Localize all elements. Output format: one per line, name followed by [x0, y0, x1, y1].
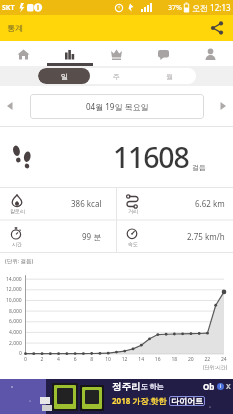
button[interactable]: 주 — [90, 68, 143, 84]
button[interactable] — [186, 41, 233, 66]
button[interactable]: 04월 19일 목요일 — [30, 94, 204, 119]
button[interactable]: 칼로리 — [0, 187, 116, 220]
staticText: SKT — [2, 3, 15, 13]
staticText: 거리 — [128, 208, 138, 214]
button[interactable]: 월 — [143, 68, 196, 84]
button[interactable] — [210, 21, 224, 35]
staticText: 37% — [168, 3, 182, 13]
staticText: Ob — [203, 381, 215, 392]
button[interactable]: 시간 — [0, 220, 116, 253]
staticText: X — [226, 382, 231, 392]
staticText: 2.75 km/h — [187, 231, 225, 242]
staticText: 2018 가장 핫한 — [112, 395, 167, 406]
staticText: 칼로리 — [10, 208, 25, 214]
staticText: 다이어트 — [171, 396, 203, 406]
staticText: 주 — [113, 72, 120, 81]
staticText: 정주리 — [112, 381, 141, 393]
button[interactable] — [218, 101, 228, 111]
staticText: 04월 19일 목요일 — [86, 101, 149, 112]
staticText: 6.62 km — [195, 198, 225, 209]
button[interactable] — [46, 41, 92, 66]
button[interactable] — [139, 41, 186, 66]
button[interactable]: 정주리 — [0, 379, 233, 414]
staticText: 11608 — [113, 138, 189, 177]
staticText: i — [220, 383, 222, 390]
staticText: 월 — [166, 72, 173, 81]
staticText: 도 하는 — [141, 382, 164, 392]
staticText: 시간 — [12, 241, 22, 247]
staticText: 99 분 — [82, 231, 102, 242]
button[interactable] — [5, 101, 15, 111]
button[interactable]: 속도 — [116, 220, 233, 253]
staticText: 걸음 — [192, 163, 206, 172]
staticText: 통계 — [7, 23, 23, 33]
button[interactable] — [92, 41, 139, 66]
button[interactable]: 거리 — [116, 187, 233, 220]
staticText: 일 — [61, 72, 68, 81]
button[interactable] — [0, 41, 46, 66]
button[interactable]: 일 — [38, 68, 90, 84]
staticText: 속도 — [128, 241, 138, 247]
staticText: 오전 12:13 — [192, 2, 231, 13]
staticText: 386 kcal — [71, 198, 102, 209]
